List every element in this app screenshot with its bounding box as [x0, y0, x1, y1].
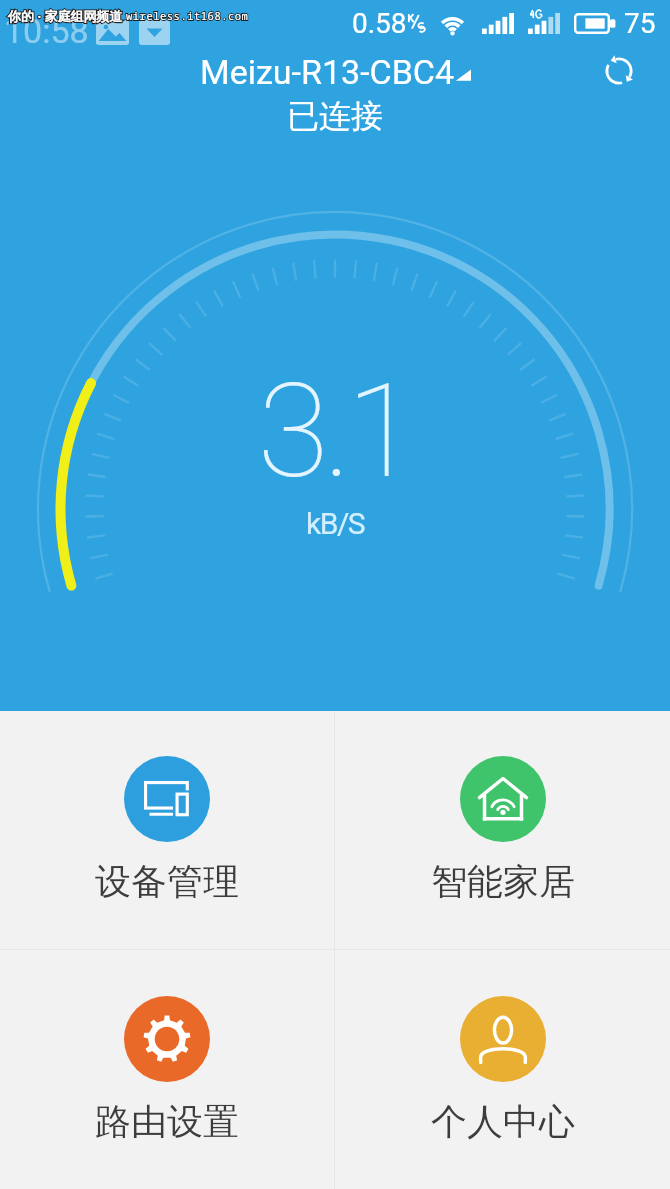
staticText: wireless.it168.com: [126, 9, 249, 23]
staticText: 75: [624, 7, 656, 40]
staticText: 10:58: [4, 11, 89, 51]
staticText: 路由设置: [95, 1099, 239, 1144]
staticText: 已连接: [287, 96, 383, 136]
staticText: 个人中心: [431, 1099, 575, 1144]
button[interactable]: Refresh: [591, 43, 647, 99]
staticText: 你的 · 家庭组网频道: [8, 7, 123, 25]
button[interactable]: 个人中心: [335, 950, 670, 1189]
staticText: wireless.it168.com: [126, 9, 249, 23]
button[interactable]: 路由设置: [0, 950, 334, 1189]
staticText: 你的 · 家庭组网频道: [8, 7, 123, 25]
staticText: 3.1: [257, 355, 413, 507]
button[interactable]: 智能家居: [335, 711, 670, 949]
staticText: 设备管理: [95, 859, 239, 904]
staticText: 0.58: [352, 7, 407, 40]
staticText: kB/S: [306, 506, 365, 541]
staticText: Meizu-R13-CBC4: [200, 52, 455, 92]
button[interactable]: 设备管理: [0, 711, 334, 949]
staticText: 智能家居: [431, 859, 575, 904]
